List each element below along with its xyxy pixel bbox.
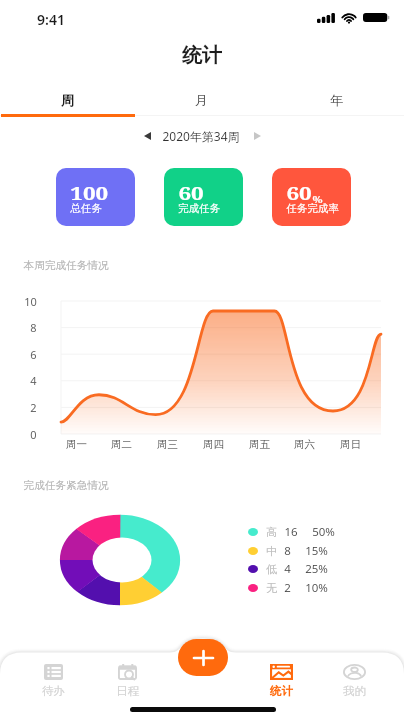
staticText: 周一 [66, 438, 87, 451]
staticText: 周三 [157, 438, 178, 451]
button[interactable]: 日程 [101, 664, 153, 698]
staticText: 10 [24, 294, 37, 309]
staticText: 周 [61, 92, 74, 108]
staticText: 任务完成率 [286, 202, 339, 215]
staticText: 6 [30, 347, 37, 362]
staticText: 8 [30, 320, 37, 335]
staticText: 8 [284, 543, 291, 559]
staticText: 2 [30, 400, 37, 415]
staticText: 周五 [249, 438, 270, 451]
staticText: 完成任务紧急情况 [23, 479, 109, 492]
staticText: 高 [266, 525, 277, 539]
button[interactable]: 60 [164, 168, 243, 226]
staticText: 低 [266, 562, 277, 576]
staticText: 无 [266, 581, 277, 595]
staticText: 待办 [42, 684, 65, 698]
button[interactable]: 下一周 [248, 128, 266, 144]
button[interactable]: 上一周 [138, 128, 156, 144]
staticText: 60 [178, 181, 204, 206]
staticText: 25% [305, 561, 328, 577]
staticText: 9:41 [37, 10, 65, 29]
staticText: 周日 [340, 438, 361, 451]
button[interactable]: 我的 [328, 664, 380, 698]
staticText: 月 [195, 92, 208, 108]
staticText: 4 [284, 561, 291, 577]
staticText: 60 [286, 181, 312, 206]
staticText: 100 [70, 181, 108, 206]
staticText: 总任务 [70, 202, 102, 215]
staticText: 2020年第34周 [162, 128, 240, 144]
staticText: 0 [30, 427, 37, 442]
staticText: 本周完成任务情况 [23, 259, 109, 272]
staticText: 统计 [182, 43, 222, 68]
button[interactable]: 周 [0, 88, 134, 112]
staticText: % [312, 193, 323, 205]
staticText: 周四 [203, 438, 224, 451]
button[interactable]: 添加 [178, 639, 228, 676]
button[interactable]: 年 [269, 88, 404, 112]
staticText: 中 [266, 544, 277, 558]
staticText: 50% [312, 524, 335, 540]
button[interactable]: 统计 [255, 664, 307, 698]
staticText: 统计 [270, 684, 293, 698]
staticText: 15% [305, 543, 328, 559]
staticText: 周二 [111, 438, 132, 451]
staticText: 2 [284, 580, 291, 596]
button[interactable]: 100 [56, 168, 135, 226]
staticText: 年 [330, 92, 343, 108]
button[interactable]: 待办 [27, 664, 79, 698]
staticText: 完成任务 [178, 202, 220, 215]
staticText: 4 [30, 373, 37, 388]
staticText: 周六 [294, 438, 315, 451]
staticText: 10% [305, 580, 328, 596]
button[interactable]: 月 [134, 88, 269, 112]
button[interactable]: 60 [272, 168, 351, 226]
staticText: 日程 [116, 684, 139, 698]
staticText: 我的 [343, 684, 366, 698]
staticText: 16 [284, 524, 298, 540]
